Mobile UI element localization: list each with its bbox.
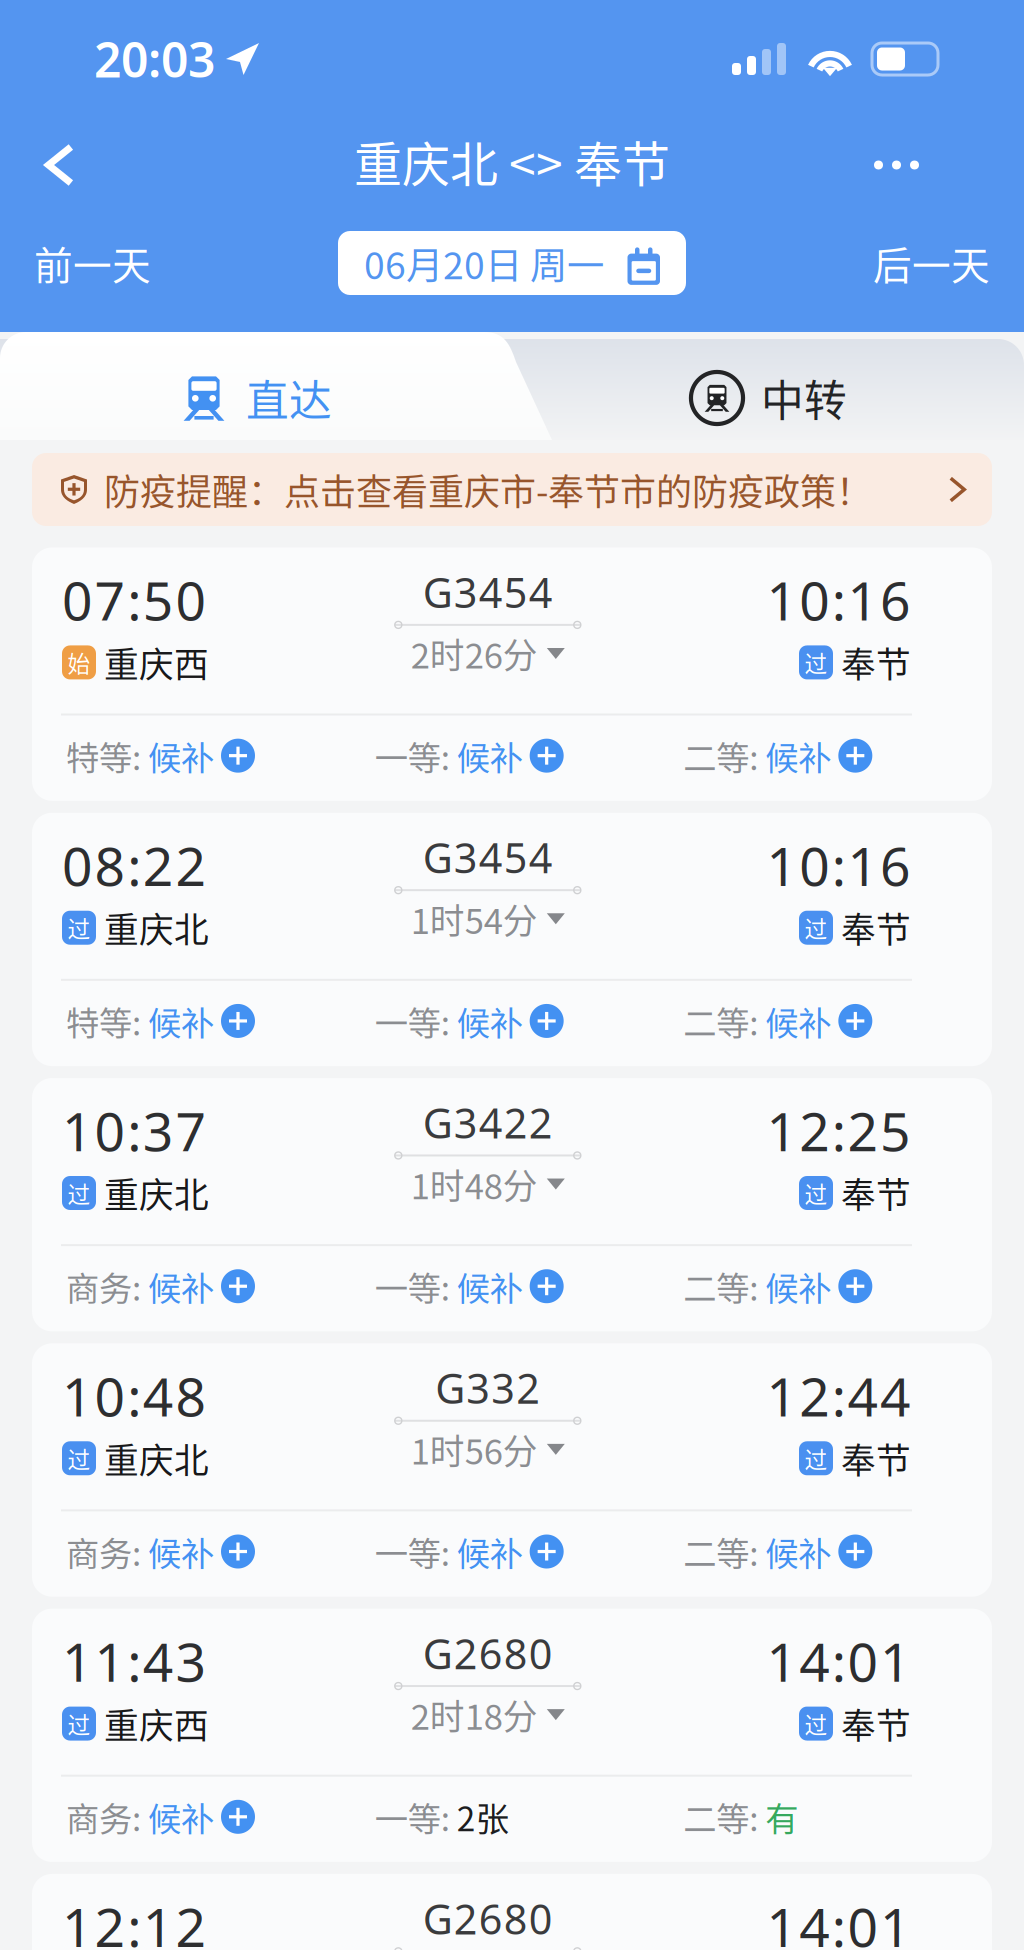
staticText: 始 bbox=[67, 646, 90, 679]
button[interactable]: 06月20日 周一 bbox=[338, 231, 686, 295]
staticText: G2680 bbox=[423, 1626, 553, 1681]
staticText: 一等: bbox=[375, 731, 457, 780]
staticText: 重庆北 bbox=[104, 903, 209, 953]
button[interactable]: 10:48 bbox=[32, 1343, 992, 1597]
button[interactable]: 前一天 bbox=[8, 223, 177, 303]
staticText: 候补 bbox=[148, 1262, 214, 1310]
staticText: 07:50 bbox=[62, 564, 206, 635]
staticText: 候补 bbox=[148, 1793, 214, 1841]
staticText: 一等: bbox=[375, 1262, 457, 1310]
staticText: 过 bbox=[67, 911, 90, 944]
staticText: 候补 bbox=[457, 1262, 523, 1310]
staticText: 过 bbox=[67, 1707, 90, 1740]
staticText: 10:37 bbox=[62, 1095, 206, 1166]
button[interactable]: More bbox=[842, 136, 951, 193]
staticText: 10:16 bbox=[767, 564, 911, 635]
staticText: 11:43 bbox=[62, 1626, 206, 1696]
button[interactable]: 10:37 bbox=[32, 1078, 992, 1331]
staticText: 候补 bbox=[765, 1262, 831, 1310]
staticText: 二等: bbox=[683, 1262, 765, 1310]
staticText: 特等: bbox=[66, 731, 148, 780]
button[interactable]: 08:22 bbox=[32, 813, 992, 1066]
staticText: 过 bbox=[804, 646, 827, 679]
button[interactable]: 直达 bbox=[0, 370, 512, 426]
staticText: 过 bbox=[804, 1442, 827, 1475]
staticText: 一等: bbox=[375, 997, 457, 1045]
staticText: 候补 bbox=[457, 731, 523, 780]
staticText: 候补 bbox=[457, 997, 523, 1045]
button[interactable]: 防疫提醒：点击查看重庆市-奉节市的防疫政策！ bbox=[32, 453, 992, 526]
staticText: 12:12 bbox=[62, 1891, 206, 1950]
staticText: 奉节 bbox=[841, 1698, 911, 1749]
staticText: 商务: bbox=[66, 1793, 148, 1841]
staticText: 重庆北 bbox=[104, 1433, 209, 1483]
staticText: 奉节 bbox=[841, 637, 911, 687]
staticText: 候补 bbox=[148, 997, 214, 1045]
staticText: 奉节 bbox=[841, 903, 911, 953]
staticText: 08:22 bbox=[62, 830, 206, 901]
button[interactable]: 12:12 bbox=[32, 1874, 992, 1950]
staticText: 10:48 bbox=[62, 1360, 206, 1431]
staticText: 12:44 bbox=[767, 1360, 911, 1431]
staticText: 14:01 bbox=[767, 1626, 911, 1696]
staticText: 防疫提醒：点击查看重庆市-奉节市的防疫政策！ bbox=[104, 463, 872, 515]
staticText: G3454 bbox=[423, 830, 553, 885]
button[interactable]: 07:50 bbox=[32, 547, 992, 801]
staticText: 过 bbox=[804, 1707, 827, 1740]
staticText: 过 bbox=[804, 911, 827, 944]
staticText: 重庆西 bbox=[104, 637, 209, 687]
staticText: G2680 bbox=[423, 1891, 553, 1946]
staticText: 二等: bbox=[683, 1527, 765, 1576]
staticText: 候补 bbox=[765, 1527, 831, 1576]
staticText: 候补 bbox=[148, 1527, 214, 1576]
staticText: 重庆北 bbox=[104, 1168, 209, 1218]
staticText: 直达 bbox=[246, 367, 332, 429]
staticText: 10:16 bbox=[767, 830, 911, 901]
staticText: 过 bbox=[67, 1442, 90, 1475]
staticText: 中转 bbox=[761, 367, 847, 429]
staticText: 商务: bbox=[66, 1527, 148, 1576]
staticText: G3422 bbox=[423, 1095, 553, 1150]
staticText: 14:01 bbox=[767, 1891, 911, 1950]
staticText: 二等: bbox=[683, 1793, 765, 1841]
staticText: 奉节 bbox=[841, 1433, 911, 1483]
staticText: 重庆西 bbox=[104, 1698, 209, 1749]
staticText: 重庆北 <> 奉节 bbox=[354, 126, 670, 196]
staticText: 候补 bbox=[457, 1527, 523, 1576]
staticText: 06月20日 周一 bbox=[364, 236, 604, 290]
staticText: 2张 bbox=[457, 1793, 509, 1841]
staticText: 过 bbox=[804, 1177, 827, 1209]
staticText: 1时48分 bbox=[411, 1159, 538, 1209]
staticText: 过 bbox=[67, 1177, 90, 1209]
staticText: 1时54分 bbox=[411, 894, 538, 944]
button[interactable]: 11:43 bbox=[32, 1609, 992, 1862]
staticText: 12:25 bbox=[767, 1095, 911, 1166]
staticText: G3454 bbox=[423, 564, 553, 619]
staticText: 二等: bbox=[683, 731, 765, 780]
staticText: 2时18分 bbox=[411, 1689, 538, 1740]
staticText: 前一天 bbox=[34, 235, 151, 291]
button[interactable]: 后一天 bbox=[847, 223, 1016, 303]
staticText: 后一天 bbox=[873, 235, 990, 291]
staticText: 商务: bbox=[66, 1262, 148, 1310]
staticText: 有 bbox=[765, 1793, 798, 1841]
button[interactable]: Back bbox=[19, 127, 100, 202]
staticText: 1时56分 bbox=[411, 1424, 538, 1474]
staticText: 奉节 bbox=[841, 1168, 911, 1218]
staticText: 特等: bbox=[66, 997, 148, 1045]
staticText: 二等: bbox=[683, 997, 765, 1045]
staticText: G332 bbox=[435, 1360, 540, 1415]
button[interactable]: 中转 bbox=[512, 370, 1024, 426]
staticText: 一等: bbox=[375, 1527, 457, 1576]
staticText: 20:03 bbox=[94, 27, 215, 91]
staticText: 候补 bbox=[148, 731, 214, 780]
staticText: 候补 bbox=[765, 997, 831, 1045]
staticText: 2时26分 bbox=[411, 628, 538, 679]
staticText: 候补 bbox=[765, 731, 831, 780]
staticText: 一等: bbox=[375, 1793, 457, 1841]
